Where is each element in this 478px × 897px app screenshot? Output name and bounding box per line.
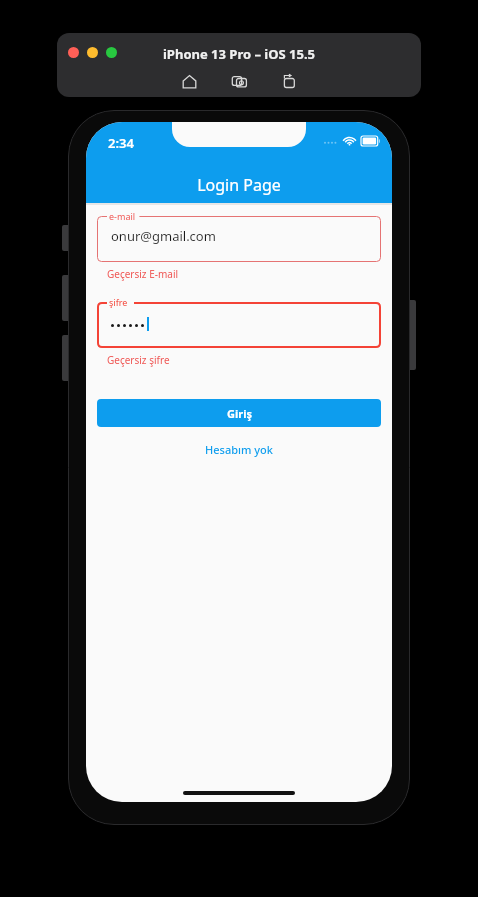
button[interactable]: Rotate (278, 70, 300, 92)
staticText: Geçersiz E-mail (107, 267, 179, 281)
staticText: Login Page (86, 174, 392, 196)
button[interactable]: Home (178, 70, 200, 92)
staticText: iPhone 13 Pro – iOS 15.5 (57, 45, 421, 63)
staticText: Hesabım yok (205, 442, 273, 457)
button[interactable]: Zoom (106, 47, 117, 58)
staticText: e-mail (109, 210, 136, 222)
button[interactable]: Minimize (87, 47, 98, 58)
staticText: 2:34 (108, 134, 134, 152)
button[interactable]: e-mail (97, 210, 381, 262)
button[interactable]: Giriş (97, 399, 381, 427)
staticText: şifre (109, 296, 128, 308)
button[interactable]: şifre (97, 296, 381, 348)
button[interactable]: Hesabım yok (97, 440, 381, 458)
button[interactable]: Close (68, 47, 79, 58)
staticText: Geçersiz şifre (107, 353, 170, 367)
staticText: Giriş (227, 406, 252, 421)
button[interactable]: Screenshot (228, 70, 250, 92)
staticText: onur@gmail.com (111, 227, 216, 245)
